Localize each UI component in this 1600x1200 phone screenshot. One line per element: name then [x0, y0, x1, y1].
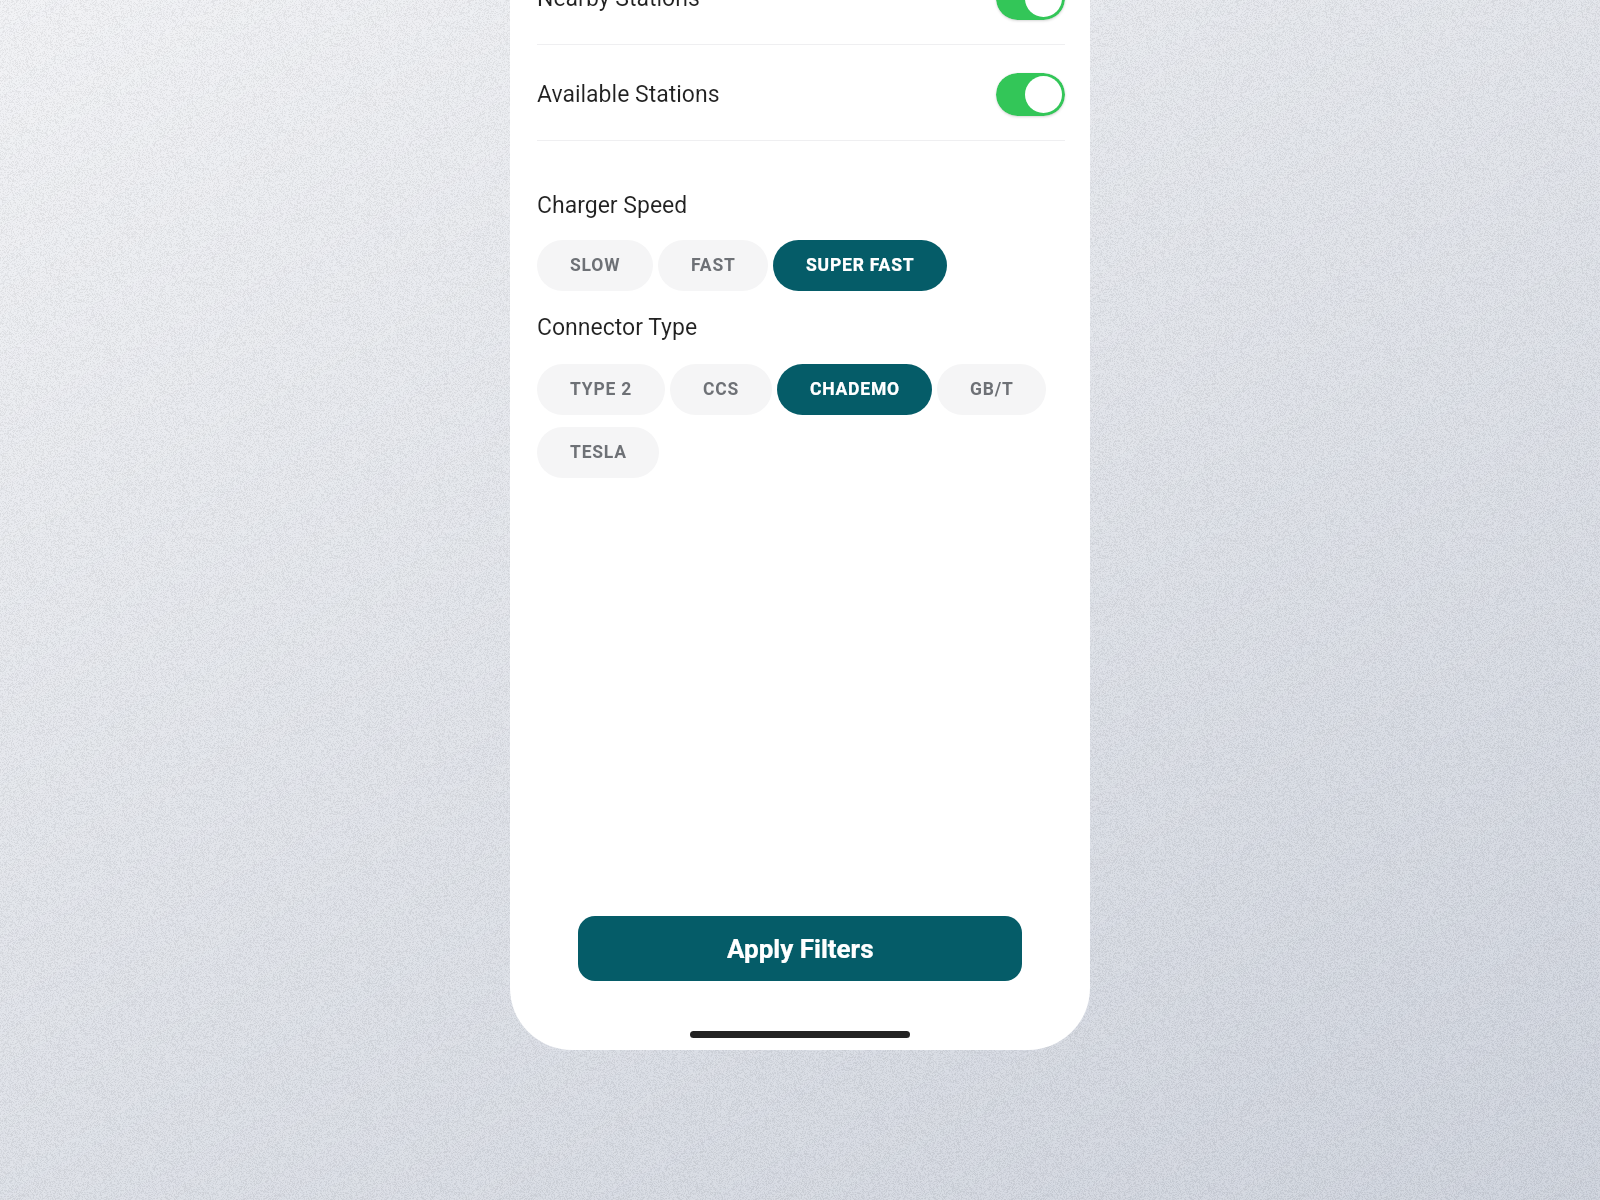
- button[interactable]: SLOW: [537, 240, 653, 291]
- staticText: Apply Filters: [727, 934, 874, 964]
- button[interactable]: TYPE 2: [537, 364, 665, 415]
- button[interactable]: TESLA: [537, 427, 659, 478]
- staticText: GB/T: [970, 379, 1014, 400]
- staticText: Available Stations: [537, 81, 720, 108]
- staticText: Connector Type: [537, 314, 698, 341]
- button[interactable]: FAST: [658, 240, 768, 291]
- staticText: SLOW: [570, 255, 621, 276]
- staticText: FAST: [691, 255, 736, 276]
- button[interactable]: CHADEMO: [777, 364, 932, 415]
- button[interactable]: Nearby Stations: [537, 0, 1065, 44]
- button[interactable]: SUPER FAST: [773, 240, 947, 291]
- button[interactable]: GB/T: [937, 364, 1046, 415]
- button[interactable]: Nearby Stations toggle, on: [996, 0, 1065, 20]
- staticText: SUPER FAST: [806, 255, 915, 276]
- button[interactable]: Apply Filters: [578, 916, 1022, 981]
- button[interactable]: Available Stations: [537, 45, 1065, 140]
- staticText: Charger Speed: [537, 192, 688, 219]
- staticText: Nearby Stations: [537, 0, 700, 12]
- staticText: TYPE 2: [570, 379, 633, 400]
- staticText: CHADEMO: [810, 379, 900, 400]
- staticText: CCS: [703, 379, 740, 400]
- button[interactable]: Available Stations toggle, on: [996, 73, 1065, 116]
- button[interactable]: CCS: [670, 364, 772, 415]
- staticText: TESLA: [570, 442, 627, 463]
